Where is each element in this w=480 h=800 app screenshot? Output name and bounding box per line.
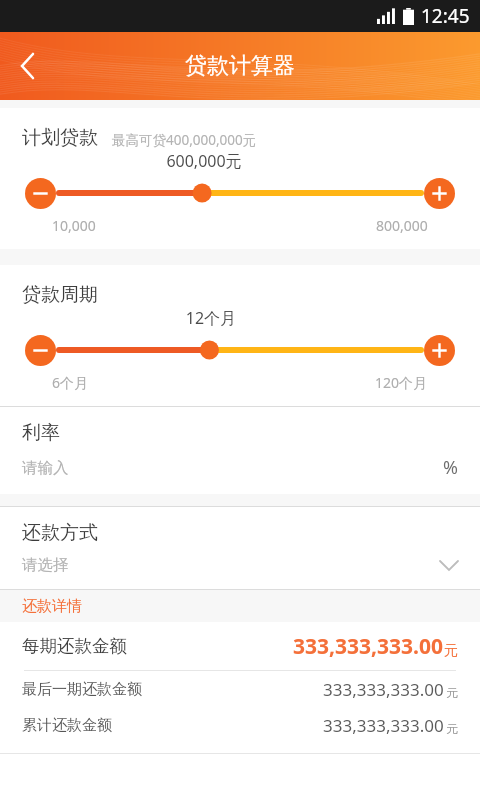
staticText: 600,000元	[70, 150, 338, 172]
staticText: 333,333,333.00	[293, 632, 444, 661]
staticText: 还款详情	[22, 597, 82, 616]
button[interactable]: 利率	[0, 407, 480, 494]
button[interactable]: 还款方式	[0, 507, 480, 589]
staticText: 请选择	[22, 555, 69, 575]
button[interactable]: Increase	[424, 178, 455, 209]
staticText: 元	[444, 642, 458, 660]
button[interactable]: Decrease	[25, 335, 56, 366]
staticText: 12:45	[421, 3, 470, 29]
staticText: 计划贷款	[22, 126, 98, 150]
button[interactable]: Increase	[424, 335, 455, 366]
staticText: 还款方式	[22, 521, 98, 545]
button[interactable]: Back	[0, 39, 54, 93]
staticText: 12个月	[70, 307, 352, 329]
staticText: 800,000	[376, 216, 428, 235]
staticText: 元	[446, 721, 458, 736]
staticText: 利率	[22, 421, 60, 445]
staticText: 10,000	[52, 216, 96, 235]
staticText: 累计还款金额	[22, 716, 112, 735]
staticText: 贷款计算器	[185, 52, 295, 80]
staticText: %	[443, 455, 458, 480]
button[interactable]: Decrease	[25, 178, 56, 209]
staticText: 贷款周期	[22, 283, 98, 307]
staticText: 120个月	[375, 373, 428, 392]
staticText: 333,333,333.00	[323, 678, 444, 701]
staticText: 最后一期还款金额	[22, 680, 142, 699]
staticText: 每期还款金额	[22, 635, 127, 657]
staticText: 请输入	[22, 458, 69, 478]
staticText: 元	[446, 685, 458, 700]
staticText: 6个月	[52, 373, 89, 392]
staticText: 333,333,333.00	[323, 714, 444, 737]
staticText: 最高可贷400,000,000元	[112, 131, 257, 149]
